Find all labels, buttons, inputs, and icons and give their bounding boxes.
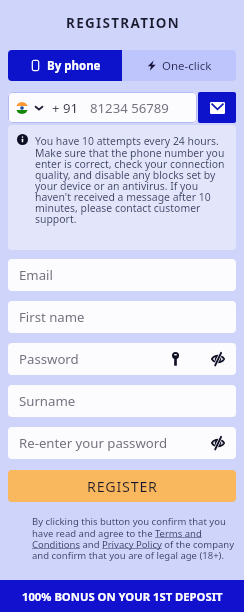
button[interactable]: By phone <box>8 50 122 81</box>
other: Show password <box>211 436 225 450</box>
button[interactable]: 100% BONUS ON YOUR 1ST DEPOSIT <box>0 580 244 612</box>
staticText: + 91 <box>52 99 79 117</box>
staticText: You have 10 attempts every 24 hours. Mak… <box>35 134 228 226</box>
button[interactable]: Surname <box>8 385 236 417</box>
staticText: Email <box>19 266 53 284</box>
button[interactable]: Email <box>8 259 236 291</box>
staticText: Re-enter your password <box>19 434 168 452</box>
staticText: First name <box>19 308 85 326</box>
staticText: Surname <box>19 392 76 410</box>
button[interactable]: REGISTER <box>8 470 236 502</box>
staticText: 100% BONUS ON YOUR 1ST DEPOSIT <box>22 589 223 604</box>
staticText: REGISTRATION <box>66 14 180 32</box>
button[interactable]: First name <box>8 301 236 333</box>
button[interactable]: + 91 <box>8 92 197 123</box>
button[interactable]: Register with email <box>198 92 236 123</box>
staticText: One-click <box>162 58 212 74</box>
button[interactable]: One-click <box>122 50 236 81</box>
staticText: By phone <box>47 58 101 74</box>
staticText: 81234 56789 <box>90 99 169 117</box>
other: Generate password <box>172 352 179 366</box>
button[interactable]: Password <box>8 343 236 375</box>
staticText: REGISTER <box>87 477 158 496</box>
staticText: By clicking this button you confirm that… <box>32 515 235 562</box>
button[interactable]: Re-enter your password <box>8 427 236 459</box>
other: Show password <box>211 352 225 366</box>
staticText: Password <box>19 350 79 368</box>
